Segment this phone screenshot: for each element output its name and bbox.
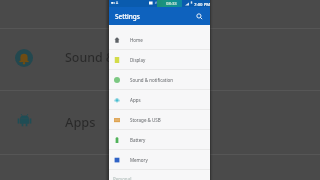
button[interactable]: Home [109, 30, 210, 49]
staticText: 08:33 [166, 1, 177, 7]
button[interactable]: Battery [109, 130, 210, 149]
staticText: Apps [65, 113, 96, 130]
staticText: Battery [130, 137, 146, 143]
button[interactable]: Search [192, 9, 206, 23]
button[interactable]: Memory [109, 150, 210, 169]
staticText: Storage & USB [130, 117, 161, 123]
staticText: Sound & notification [130, 77, 174, 83]
button[interactable]: Sound & notification [109, 70, 210, 89]
button[interactable]: Apps [109, 90, 210, 109]
staticText: Memory [130, 157, 148, 163]
staticText: Settings [115, 12, 140, 21]
button[interactable]: Display [109, 50, 210, 69]
staticText: Home [130, 37, 143, 43]
staticText: Personal [113, 176, 132, 180]
staticText: 7:00 PM [194, 1, 211, 7]
button[interactable]: Storage & USB [109, 110, 210, 129]
staticText: Sound & [65, 49, 115, 66]
staticText: Apps [130, 97, 141, 103]
staticText: Display [130, 57, 146, 63]
